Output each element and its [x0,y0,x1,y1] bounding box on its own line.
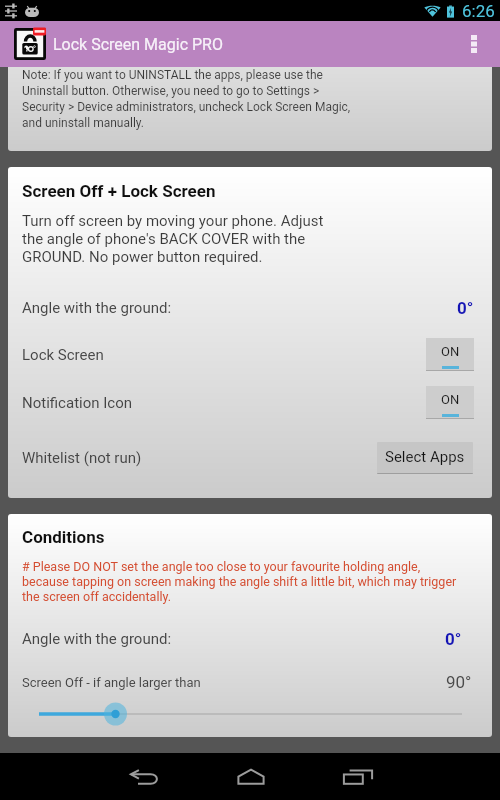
button[interactable] [8,703,492,725]
staticText: Conditions [22,527,105,547]
staticText: Select Apps [385,448,465,466]
staticText: Angle with the ground: [22,630,172,648]
staticText: Screen Off + Lock Screen [22,181,216,201]
staticText: Angle with the ground: [22,299,172,317]
staticText: ON [441,392,460,407]
staticText: Note: If you want to UNINSTALL the apps,… [22,68,351,130]
button[interactable]: Recent apps [326,753,390,800]
staticText: Notification Icon [22,394,133,412]
staticText: 0° [445,629,462,649]
button[interactable]: ON [426,338,474,371]
staticText: Lock Screen [22,346,104,364]
staticText: Screen Off - if angle larger than [22,675,201,690]
button[interactable]: ON [426,386,474,419]
button[interactable]: More options [457,21,491,67]
staticText: 90° [446,672,472,692]
staticText: # Please DO NOT set the angle too close … [22,559,457,604]
staticText: 0° [457,298,474,318]
staticText: 6:26 [462,1,495,21]
button[interactable]: Back [112,753,176,800]
staticText: Lock Screen Magic PRO [53,35,223,54]
staticText: ON [441,344,460,359]
button[interactable]: Home [219,753,283,800]
staticText: Whitelist (not run) [22,449,142,467]
button[interactable]: Select Apps [377,442,473,474]
staticText: Turn off screen by moving your phone. Ad… [22,212,324,266]
